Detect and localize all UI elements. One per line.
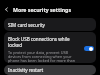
button[interactable]: Block USB connections toggle (84, 46, 94, 51)
button[interactable]: Back (0, 0, 13, 18)
button[interactable]: SIM card security (4, 18, 96, 31)
staticText: To protect your data, prevent USB device… (8, 50, 80, 63)
staticText: SIM card security (8, 22, 45, 28)
button[interactable]: Inactivity restart (4, 65, 96, 75)
staticText: Block USB connections while locked (8, 36, 73, 48)
button[interactable]: Block USB connections while locked (4, 32, 96, 63)
staticText: Inactivity restart (8, 67, 44, 73)
staticText: More security settings (13, 6, 71, 13)
